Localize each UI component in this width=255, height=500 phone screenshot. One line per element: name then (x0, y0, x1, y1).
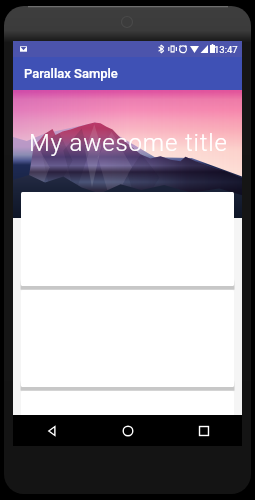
staticText: My awesome title (29, 129, 228, 157)
staticText: Parallax Sample (24, 66, 118, 81)
button[interactable]: Recent apps (166, 415, 242, 446)
button[interactable]: Home (90, 415, 166, 446)
button[interactable]: Parallax Sample (13, 57, 242, 90)
staticText: 13:47 (214, 44, 238, 55)
button[interactable]: Back (13, 415, 90, 446)
